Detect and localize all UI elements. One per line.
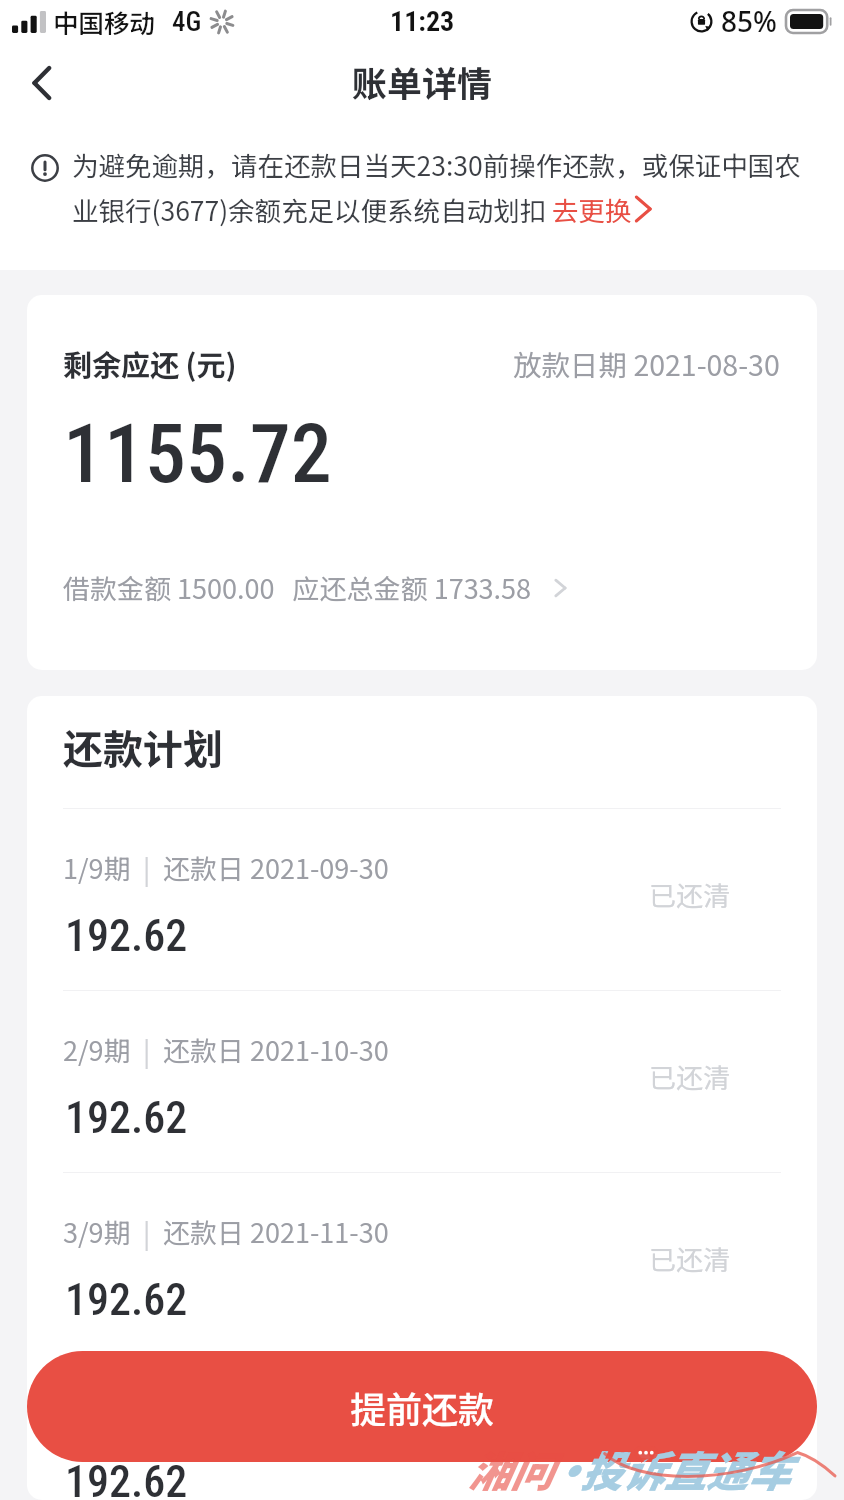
staticText: 已还清 bbox=[649, 875, 730, 914]
staticText: 去更换 bbox=[552, 190, 632, 228]
staticText: 中国移动 bbox=[53, 3, 156, 40]
staticText: | bbox=[131, 1030, 163, 1069]
staticText: 85% bbox=[721, 2, 777, 40]
staticText: 提前还款 bbox=[350, 1381, 495, 1433]
staticText: 已还清 bbox=[649, 1421, 730, 1460]
button[interactable]: 1/9期 bbox=[27, 809, 817, 990]
staticText: 192.62 bbox=[65, 1274, 188, 1326]
staticText: 账单详情 bbox=[352, 56, 493, 107]
staticText: 还款日 2021-11-30 bbox=[163, 1212, 389, 1251]
staticText: 1155.72 bbox=[63, 406, 332, 502]
staticText: 剩余应还 (元) bbox=[63, 342, 237, 384]
staticText: 2/9期 bbox=[63, 1030, 131, 1069]
staticText: 192.62 bbox=[65, 910, 188, 962]
staticText: 借款金额 1500.00 应还总金额 1733.58 bbox=[63, 568, 532, 607]
button[interactable]: 4/9期 bbox=[27, 1355, 817, 1500]
staticText: 3/9期 bbox=[63, 1212, 131, 1251]
staticText: 还款日 2021-09-30 bbox=[163, 848, 389, 887]
staticText: 业银行(3677)余额充足以便系统自动划扣 bbox=[72, 190, 547, 228]
staticText: 为避免逾期，请在还款日当天23:30前操作还款，或保证中国农 bbox=[72, 145, 801, 183]
staticText: 已还清 bbox=[649, 1057, 730, 1096]
button[interactable]: 3/9期 bbox=[27, 1173, 817, 1354]
staticText: 还款日 2021-12-30 bbox=[163, 1394, 389, 1433]
staticText: 已还清 bbox=[649, 1239, 730, 1278]
staticText: · bbox=[547, 1438, 590, 1499]
button[interactable]: 提前还款 bbox=[27, 1351, 817, 1462]
staticText: | bbox=[131, 1212, 163, 1251]
staticText: 放款日期 2021-08-30 bbox=[513, 343, 780, 384]
staticText: 192.62 bbox=[65, 1456, 188, 1500]
button[interactable]: 去更换 bbox=[552, 190, 656, 228]
button[interactable]: 剩余应还 (元) bbox=[27, 295, 817, 670]
staticText: 还款计划 bbox=[63, 718, 223, 776]
staticText: 1/9期 bbox=[63, 848, 131, 887]
button[interactable]: Back bbox=[6, 47, 78, 119]
staticText: 投诉直通车 bbox=[580, 1438, 791, 1499]
staticText: 湘问 bbox=[468, 1438, 553, 1499]
staticText: | bbox=[131, 848, 163, 887]
staticText: 还款日 2021-10-30 bbox=[163, 1030, 389, 1069]
staticText: 192.62 bbox=[65, 1092, 188, 1144]
staticText: 4G bbox=[172, 6, 202, 38]
button[interactable]: 2/9期 bbox=[27, 991, 817, 1172]
staticText: 11:23 bbox=[390, 5, 455, 38]
